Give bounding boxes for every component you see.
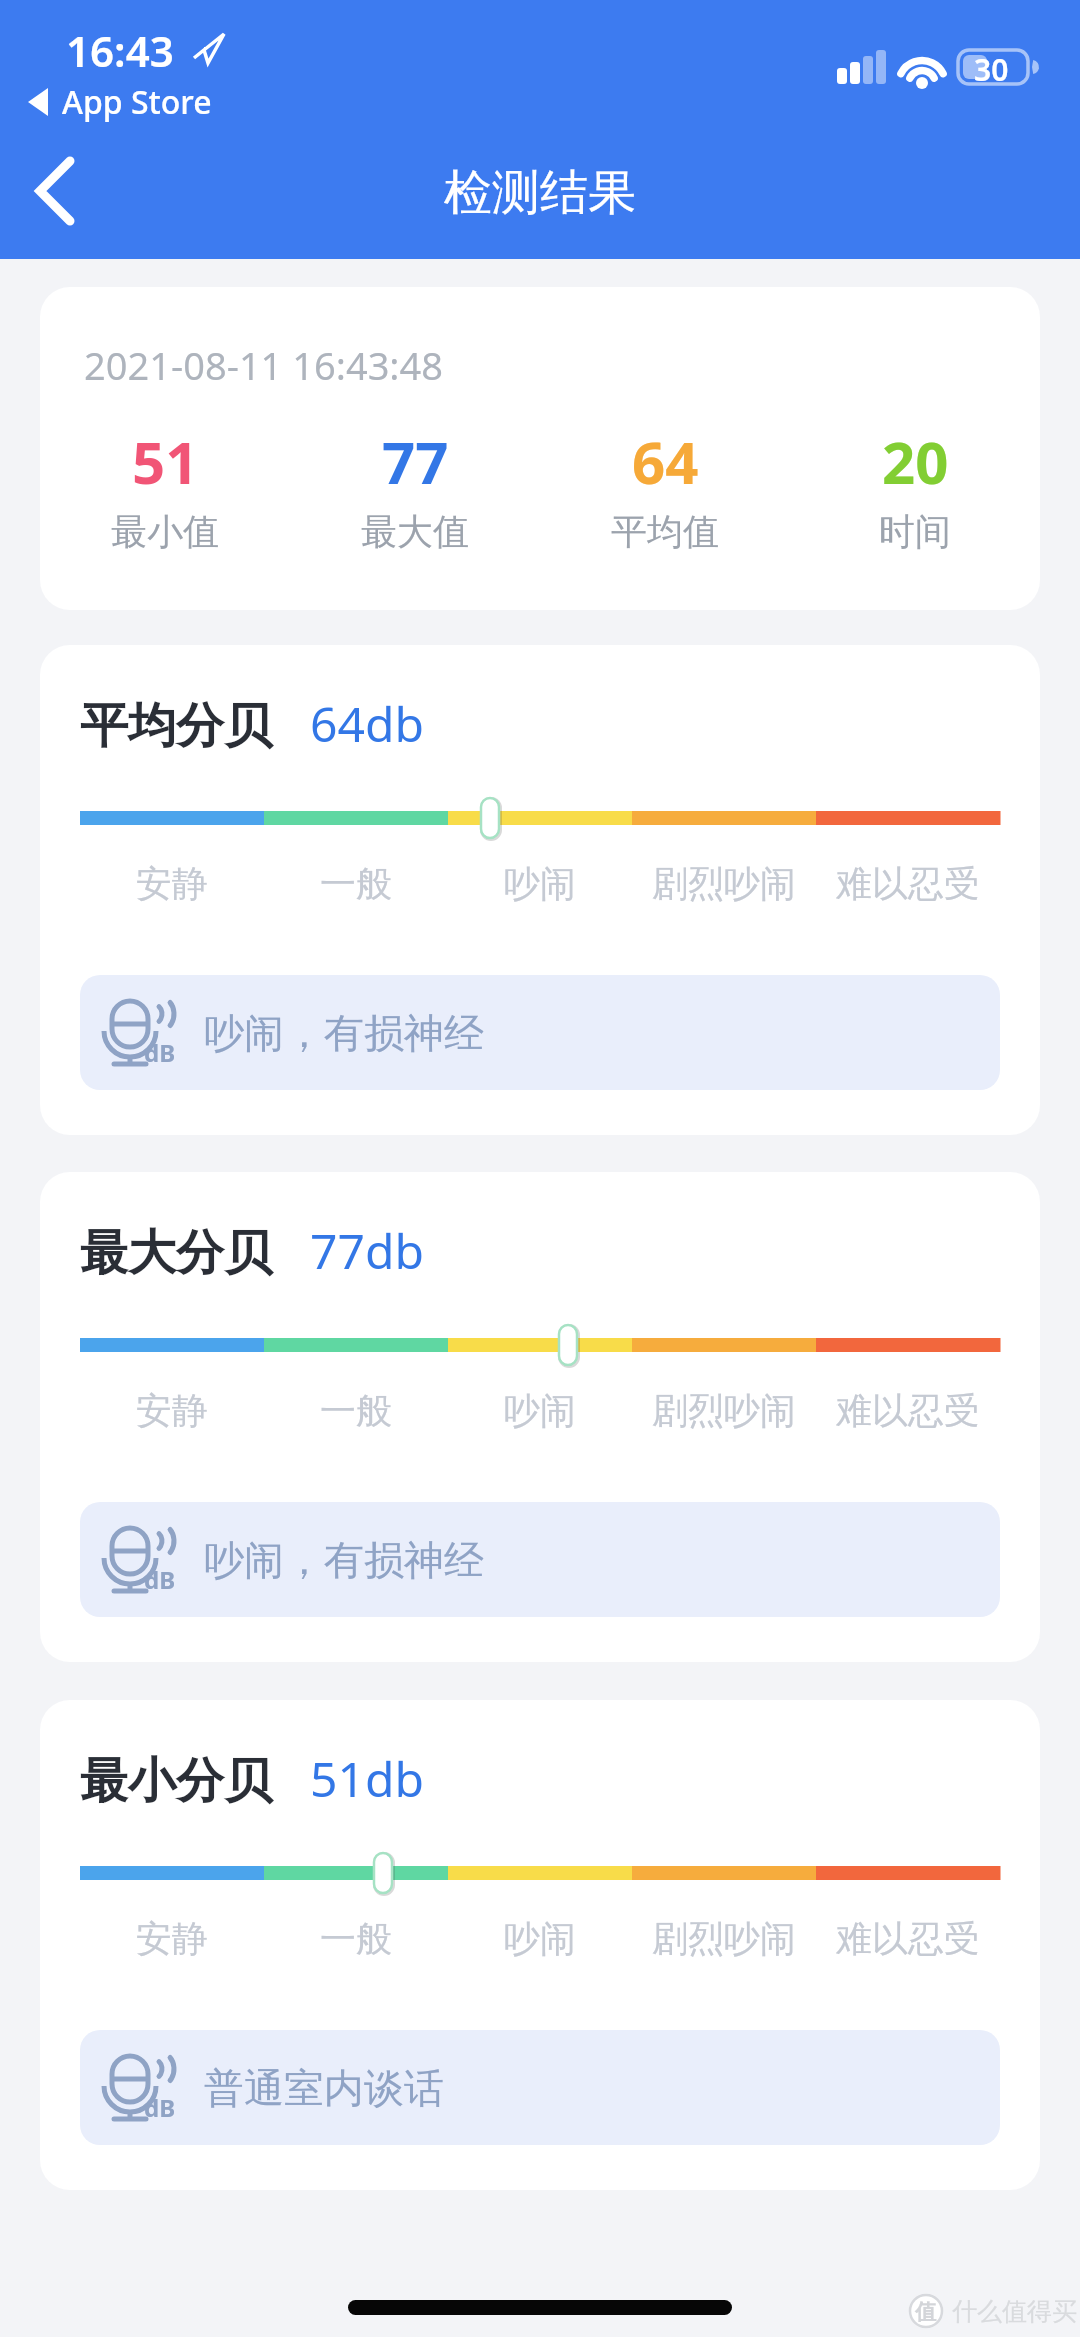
staticText: 77 xyxy=(382,422,449,501)
staticText: 最小分贝 xyxy=(80,1751,272,1811)
staticText: 吵闹 xyxy=(504,1916,576,1961)
staticText: 值 xyxy=(915,2299,936,2325)
staticText: 剧烈吵闹 xyxy=(652,861,796,906)
staticText: 什么值得买 xyxy=(952,2296,1077,2327)
staticText: App Store xyxy=(62,80,212,124)
staticText: 平均值 xyxy=(611,509,719,554)
staticText: 难以忍受 xyxy=(836,861,980,906)
staticText: dB xyxy=(144,2091,176,2124)
staticText: 64db xyxy=(310,691,424,756)
staticText: 难以忍受 xyxy=(836,1916,980,1961)
staticText: 16:43 xyxy=(66,22,174,79)
staticText: 吵闹，有损神经 xyxy=(204,1535,484,1585)
staticText: 检测结果 xyxy=(444,163,636,223)
staticText: 剧烈吵闹 xyxy=(652,1916,796,1961)
staticText: 一般 xyxy=(320,1916,392,1961)
staticText: 难以忍受 xyxy=(836,1388,980,1433)
staticText: 20 xyxy=(882,422,949,501)
button[interactable] xyxy=(30,155,80,230)
staticText: 77db xyxy=(310,1218,424,1283)
staticText: 最大值 xyxy=(361,509,469,554)
staticText: 30 xyxy=(974,49,1009,90)
staticText: 64 xyxy=(632,422,699,501)
staticText: 最大分贝 xyxy=(80,1223,272,1283)
staticText: 一般 xyxy=(320,861,392,906)
staticText: 吵闹 xyxy=(504,1388,576,1433)
staticText: 最小值 xyxy=(111,509,219,554)
staticText: 51 xyxy=(132,422,199,501)
staticText: dB xyxy=(144,1563,176,1596)
button[interactable]: App Store xyxy=(28,80,212,124)
staticText: 安静 xyxy=(136,861,208,906)
staticText: 剧烈吵闹 xyxy=(652,1388,796,1433)
staticText: 时间 xyxy=(879,509,951,554)
staticText: 51db xyxy=(310,1746,424,1811)
staticText: 2021-08-11 16:43:48 xyxy=(84,339,444,391)
staticText: 平均分贝 xyxy=(80,696,272,756)
staticText: 安静 xyxy=(136,1388,208,1433)
staticText: dB xyxy=(144,1036,176,1069)
staticText: 一般 xyxy=(320,1388,392,1433)
staticText: 普通室内谈话 xyxy=(204,2063,444,2113)
staticText: 吵闹 xyxy=(504,861,576,906)
staticText: 安静 xyxy=(136,1916,208,1961)
staticText: 吵闹，有损神经 xyxy=(204,1008,484,1058)
